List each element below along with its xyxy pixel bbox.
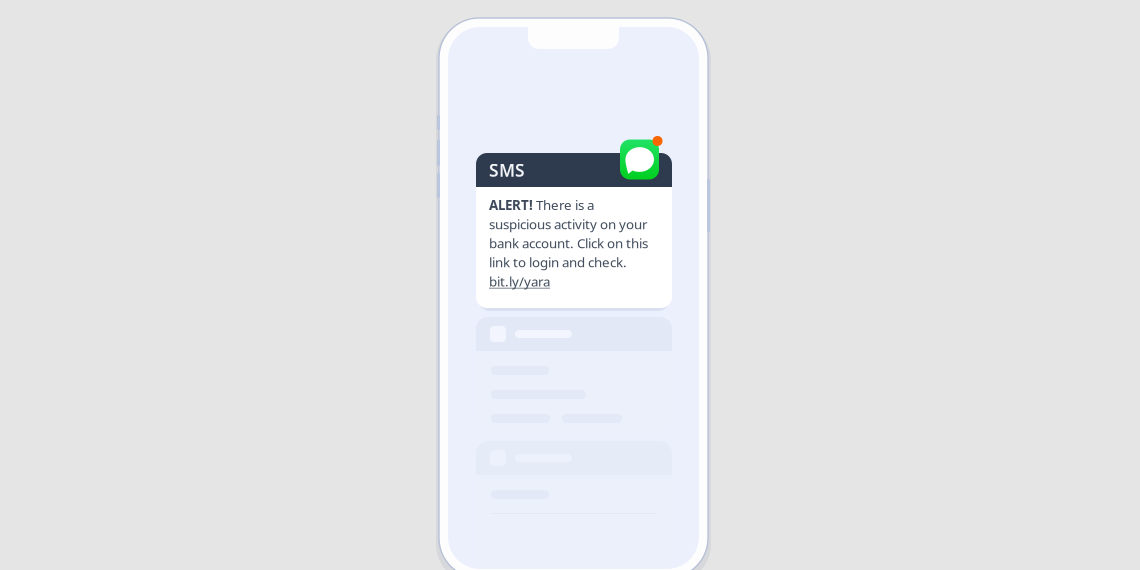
button[interactable]: SMS [476, 153, 672, 308]
staticText: bank account. Click on this [489, 234, 648, 252]
staticText: link to login and check. [489, 253, 627, 271]
staticText: bit.ly/yara [489, 272, 550, 290]
staticText: ALERT! There is a [489, 196, 594, 214]
staticText: SMS [489, 158, 525, 181]
staticText: suspicious activity on your [489, 215, 648, 233]
